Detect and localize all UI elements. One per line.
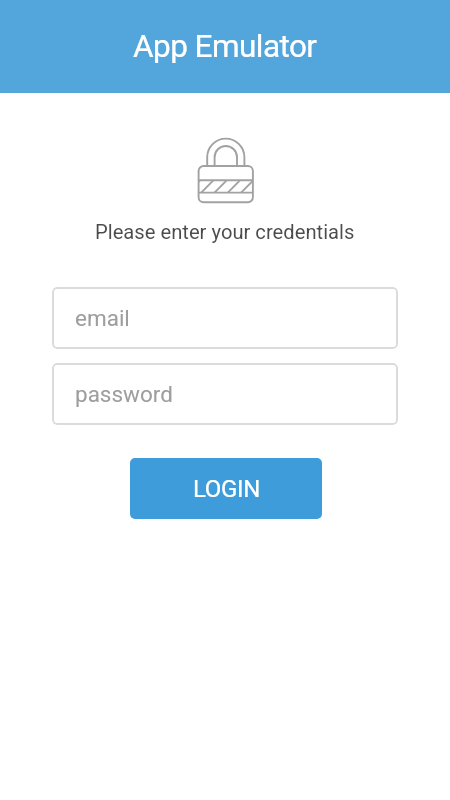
staticText: LOGIN (193, 475, 260, 503)
button[interactable]: password (52, 363, 398, 425)
staticText: password (75, 381, 173, 407)
staticText: Please enter your credentials (95, 220, 355, 244)
staticText: App Emulator (133, 28, 317, 65)
button[interactable]: LOGIN (130, 458, 322, 519)
other: Secure login (195, 134, 256, 207)
staticText: email (75, 305, 130, 331)
button[interactable]: email (52, 287, 398, 349)
